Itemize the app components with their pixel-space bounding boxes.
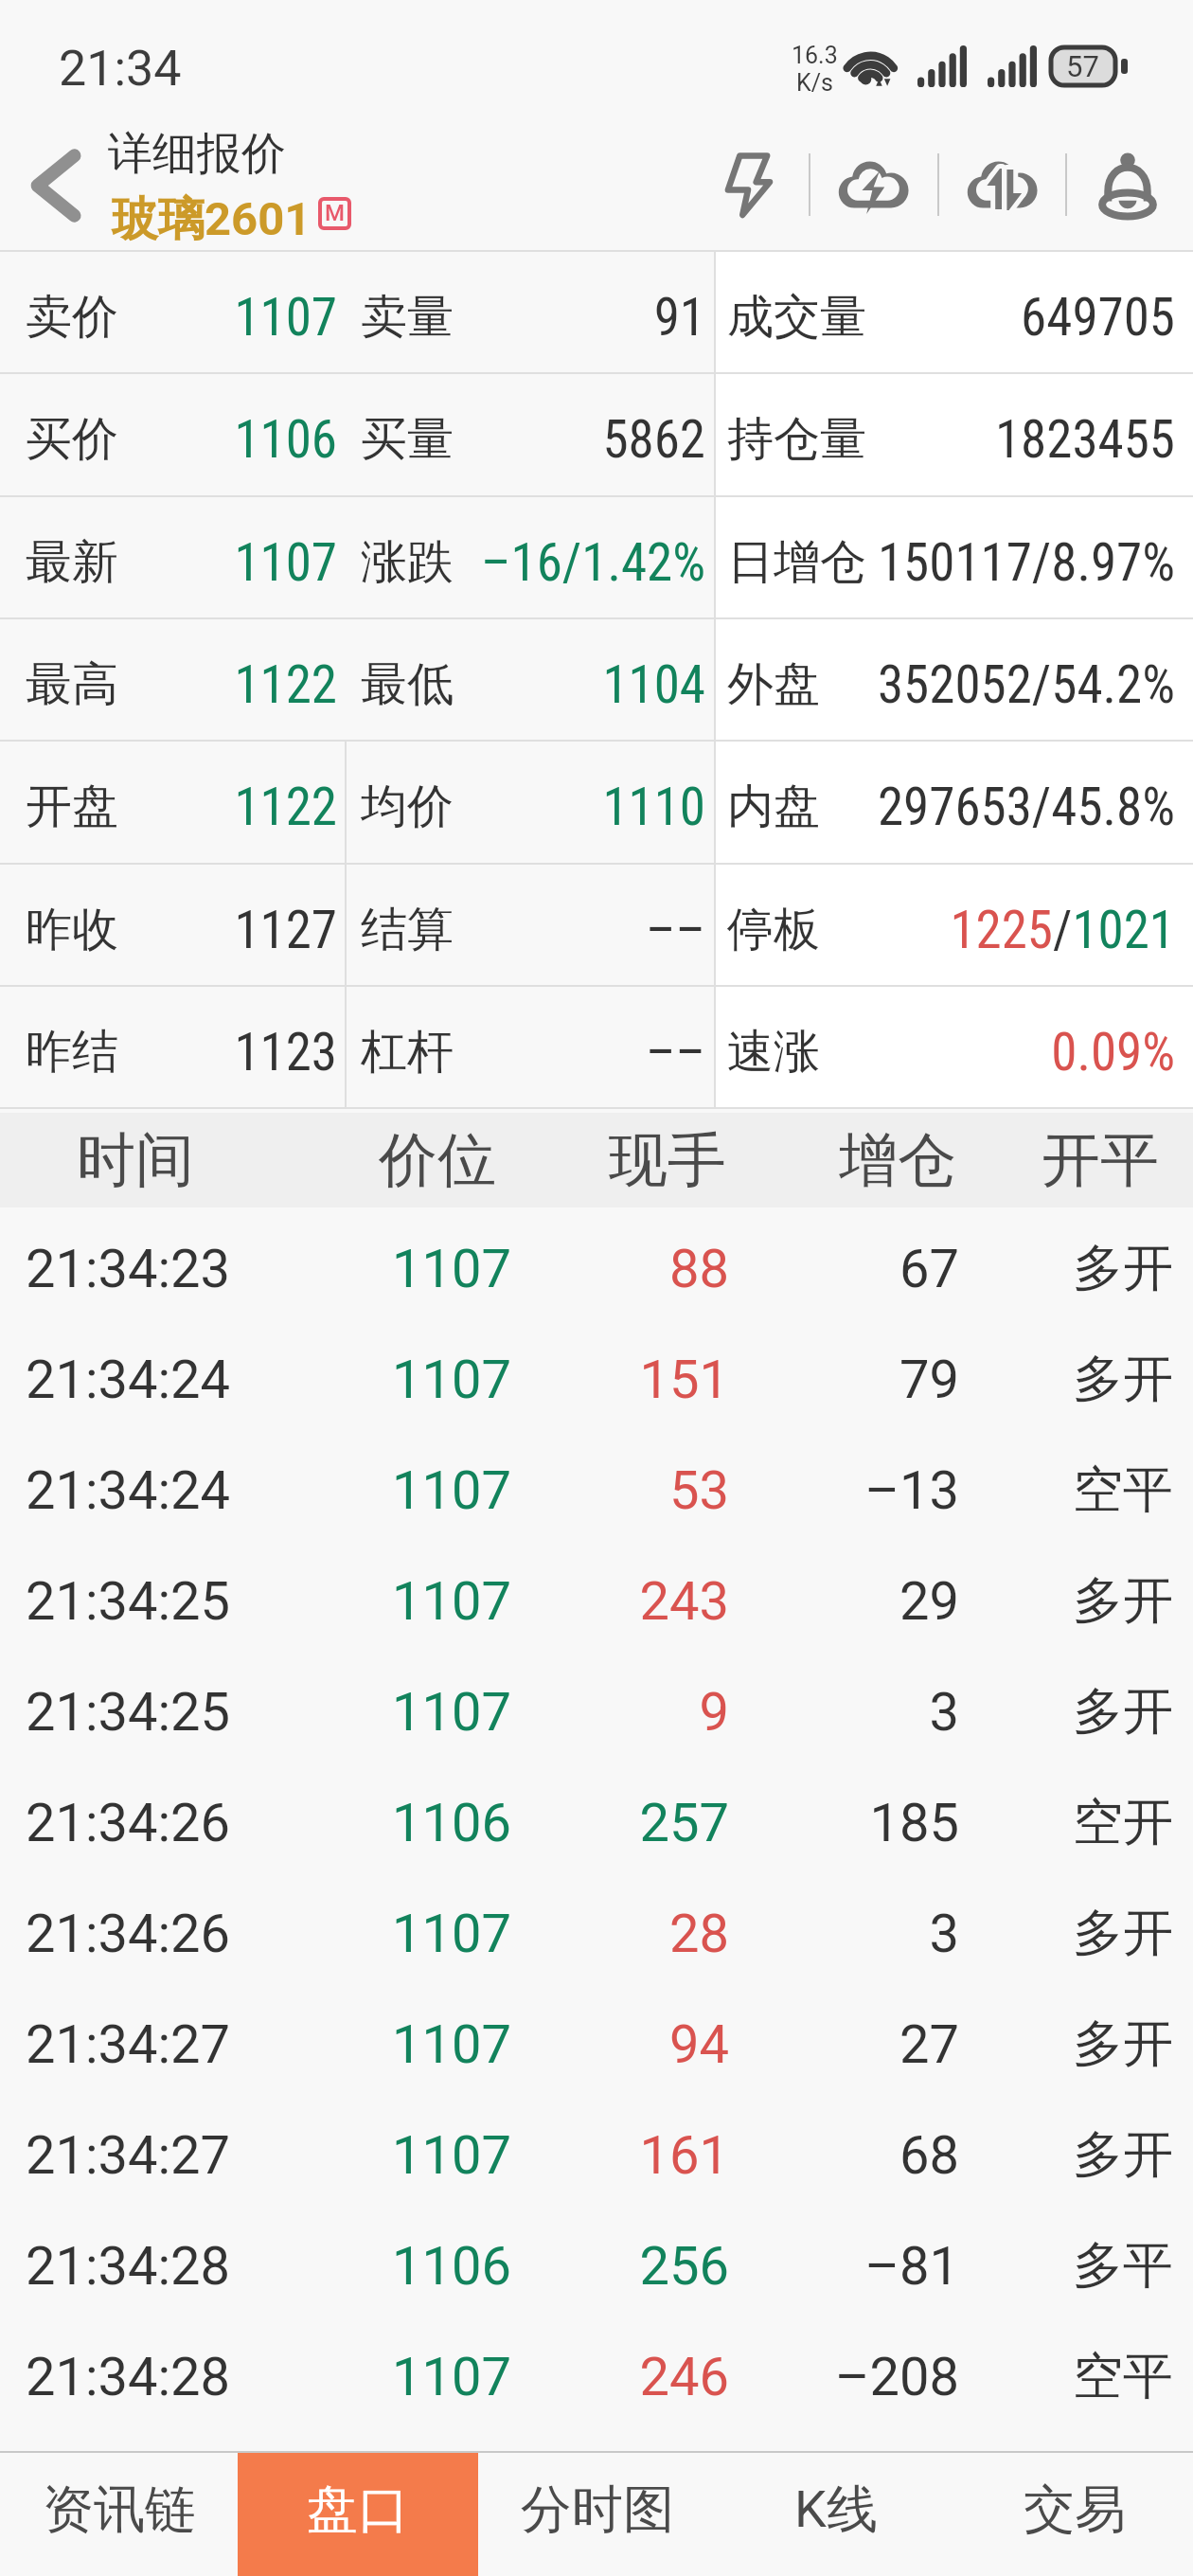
- button[interactable]: 昨收: [0, 865, 1193, 987]
- staticText: 67: [656, 1238, 959, 1300]
- staticText: 243: [426, 1570, 729, 1633]
- staticText: 交易: [1024, 2478, 1126, 2542]
- staticText: 1106: [208, 2235, 511, 2298]
- staticText: 价位: [324, 1123, 551, 1197]
- button[interactable]: 21:34:25: [0, 1656, 1193, 1767]
- staticText: 1225/1021: [758, 900, 1175, 960]
- staticText: 多开: [870, 2123, 1173, 2187]
- button[interactable]: 盘口: [238, 2453, 478, 2576]
- button[interactable]: 分时图: [478, 2453, 717, 2576]
- staticText: 1122: [53, 777, 337, 837]
- staticText: 最低: [361, 655, 454, 714]
- staticText: 3: [656, 1681, 959, 1744]
- staticText: 1122: [53, 654, 337, 715]
- button[interactable]: Flash: [703, 133, 793, 237]
- staticText: 94: [426, 2013, 729, 2076]
- staticText: 21:34:25: [0, 1681, 230, 1744]
- staticText: 27: [656, 2013, 959, 2076]
- staticText: 多开: [870, 2012, 1173, 2076]
- staticText: 停板: [727, 901, 820, 959]
- staticText: 16.3: [792, 42, 838, 69]
- staticText: K线: [794, 2478, 878, 2542]
- staticText: 1107: [53, 532, 337, 593]
- staticText: 21:34:27: [0, 2013, 230, 2076]
- staticText: 21:34: [59, 40, 182, 98]
- staticText: 256: [426, 2235, 729, 2298]
- button[interactable]: 21:34:28: [0, 2321, 1193, 2432]
- staticText: 结算: [361, 901, 454, 959]
- staticText: 1107: [208, 1681, 511, 1744]
- staticText: 杠杆: [361, 1023, 454, 1082]
- staticText: 150117/8.97%: [758, 532, 1175, 593]
- staticText: 21:34:25: [0, 1570, 230, 1633]
- button[interactable]: 资讯链: [0, 2453, 238, 2576]
- staticText: 352052/54.2%: [758, 654, 1175, 715]
- staticText: 57: [1066, 49, 1099, 83]
- staticText: 开平: [987, 1123, 1193, 1197]
- staticText: 速涨: [727, 1023, 820, 1082]
- staticText: 日增仓: [727, 533, 866, 592]
- staticText: 时间: [22, 1123, 249, 1197]
- staticText: 1107: [208, 1570, 511, 1633]
- staticText: 1104: [365, 654, 705, 715]
- button[interactable]: K线: [717, 2453, 955, 2576]
- button[interactable]: Notifications: [1082, 133, 1173, 237]
- staticText: 151: [426, 1349, 729, 1411]
- staticText: 最新: [26, 533, 118, 592]
- staticText: 185: [656, 1792, 959, 1854]
- button[interactable]: 最高: [0, 619, 1193, 742]
- staticText: 1107: [208, 1238, 511, 1300]
- staticText: 现手: [554, 1123, 781, 1197]
- button[interactable]: 卖价: [0, 252, 1193, 374]
- button[interactable]: 21:34:28: [0, 2210, 1193, 2321]
- button[interactable]: 21:34:26: [0, 1767, 1193, 1878]
- staticText: 详细报价: [108, 126, 286, 182]
- staticText: 21:34:24: [0, 1349, 230, 1411]
- staticText: 1127: [53, 900, 337, 960]
- staticText: 昨收: [26, 901, 118, 959]
- staticText: 内盘: [727, 778, 820, 836]
- button[interactable]: 21:34:25: [0, 1546, 1193, 1656]
- button[interactable]: 21:34:24: [0, 1324, 1193, 1435]
- staticText: 79: [656, 1349, 959, 1411]
- staticText: 21:34:24: [0, 1459, 230, 1522]
- staticText: 买量: [361, 410, 454, 469]
- staticText: 297653/45.8%: [758, 777, 1175, 837]
- staticText: –208: [656, 2346, 959, 2408]
- button[interactable]: 交易: [955, 2453, 1193, 2576]
- button[interactable]: 21:34:23: [0, 1213, 1193, 1324]
- staticText: 0.09%: [758, 1022, 1175, 1082]
- button[interactable]: 最新: [0, 497, 1193, 619]
- staticText: 91: [365, 287, 705, 348]
- staticText: 分时图: [521, 2478, 674, 2542]
- staticText: 增仓: [784, 1123, 1011, 1197]
- button[interactable]: Storm alert: [828, 133, 918, 237]
- staticText: 1106: [208, 1792, 511, 1854]
- button[interactable]: Back: [8, 134, 102, 238]
- button[interactable]: 昨结: [0, 987, 1193, 1109]
- staticText: 9: [426, 1681, 729, 1744]
- button[interactable]: 21:34:27: [0, 1989, 1193, 2100]
- staticText: 1123: [53, 1022, 337, 1082]
- staticText: 均价: [361, 778, 454, 836]
- staticText: 88: [426, 1238, 729, 1300]
- staticText: 1107: [208, 2346, 511, 2408]
- button[interactable]: 21:34:24: [0, 1435, 1193, 1546]
- button[interactable]: 21:34:27: [0, 2100, 1193, 2210]
- staticText: 3: [656, 1903, 959, 1965]
- button[interactable]: Data flow: [956, 133, 1047, 237]
- button[interactable]: 买价: [0, 374, 1193, 496]
- staticText: 卖价: [26, 288, 118, 347]
- staticText: K/s: [796, 69, 833, 97]
- staticText: 21:34:27: [0, 2124, 230, 2187]
- staticText: 21:34:28: [0, 2346, 230, 2408]
- staticText: 5862: [365, 409, 705, 470]
- staticText: 最高: [26, 655, 118, 714]
- staticText: 1106: [53, 409, 337, 470]
- staticText: 246: [426, 2346, 729, 2408]
- button[interactable]: 21:34:26: [0, 1878, 1193, 1989]
- staticText: 1107: [208, 2013, 511, 2076]
- staticText: 持仓量: [727, 410, 866, 469]
- staticText: 空平: [870, 1458, 1173, 1522]
- button[interactable]: 开盘: [0, 742, 1193, 864]
